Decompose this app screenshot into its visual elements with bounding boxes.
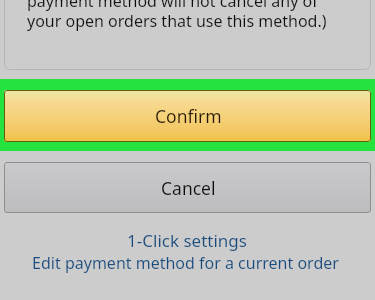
staticText: Edit payment method for a current order	[32, 252, 339, 274]
button[interactable]: 1-Click settings	[0, 229, 375, 252]
staticText: Confirm	[155, 104, 222, 128]
staticText: 1-Click settings	[127, 229, 247, 252]
button[interactable]: Confirm	[4, 90, 371, 142]
button[interactable]: Edit payment method for a current order	[0, 251, 375, 274]
staticText: payment method will not cancel any of yo…	[27, 0, 327, 31]
staticText: Cancel	[161, 176, 216, 200]
button[interactable]: Cancel	[4, 162, 371, 213]
